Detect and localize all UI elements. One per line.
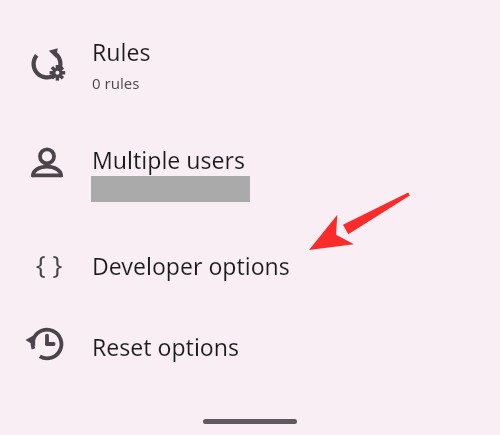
staticText: { } (29, 246, 69, 281)
staticText: 0 rules (92, 73, 140, 93)
button[interactable]: Reset options (0, 313, 500, 377)
staticText: Developer options (92, 250, 290, 281)
button[interactable]: { } (0, 232, 500, 296)
staticText: Rules (92, 36, 151, 67)
staticText: Multiple users (92, 144, 245, 175)
button[interactable]: Rules (0, 18, 500, 110)
button[interactable]: Multiple users (0, 126, 500, 218)
staticText: Reset options (92, 331, 239, 362)
